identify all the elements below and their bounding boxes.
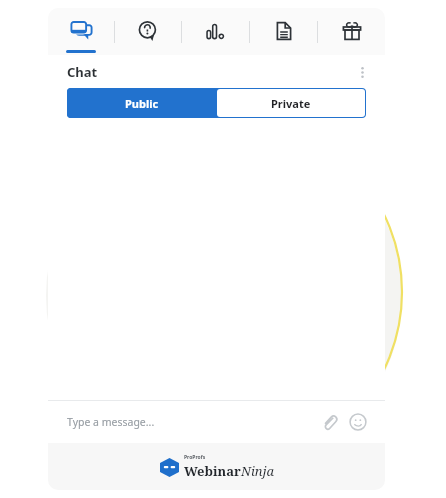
button[interactable]: Handouts	[250, 8, 317, 55]
staticText: Private	[271, 96, 311, 111]
staticText: Webinar	[184, 462, 241, 480]
button[interactable]: Chat	[48, 8, 114, 55]
button[interactable]: Type a message...	[67, 401, 316, 443]
staticText: Type a message...	[67, 415, 155, 429]
button[interactable]: Offers	[318, 8, 385, 55]
button[interactable]: Attach file	[316, 409, 342, 435]
staticText: Public	[125, 96, 159, 111]
staticText: ProProfs	[184, 454, 206, 461]
button[interactable]: Polls	[182, 8, 249, 55]
button[interactable]: Questions	[115, 8, 181, 55]
button[interactable]: More options	[351, 61, 373, 83]
button[interactable]: ProProfs	[160, 454, 274, 480]
staticText: Ninja	[241, 462, 274, 480]
staticText: Chat	[67, 63, 98, 81]
button[interactable]: Private	[217, 89, 365, 117]
button[interactable]: Public	[67, 88, 216, 118]
button[interactable]: Emoji	[345, 409, 371, 435]
